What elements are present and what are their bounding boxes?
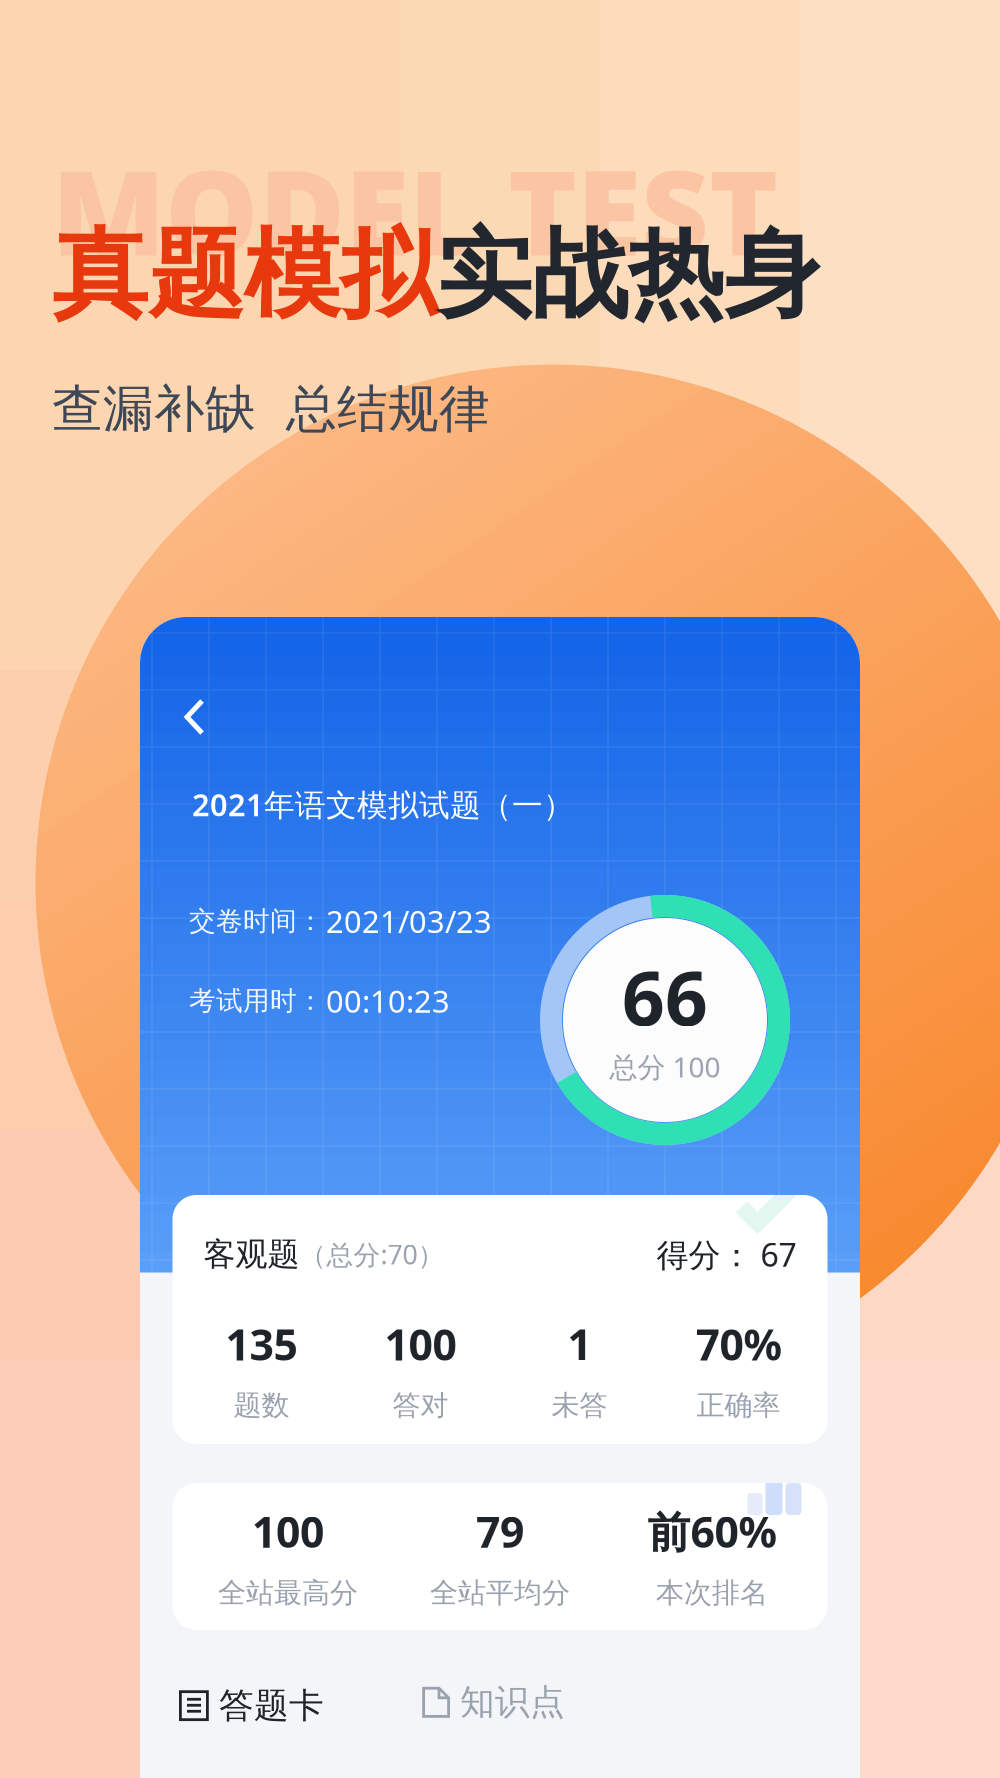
- button[interactable]: 答题卡: [140, 1670, 382, 1748]
- staticText: 考试用时：: [189, 984, 324, 1017]
- staticText: 题数: [233, 1388, 289, 1423]
- staticText: 真题模拟: [52, 216, 436, 334]
- staticText: 2021/03/23: [326, 901, 492, 941]
- staticText: 未答: [551, 1388, 607, 1423]
- staticText: 交卷时间：: [189, 905, 324, 937]
- staticText: 总分 100: [609, 1048, 720, 1085]
- staticText: 全站平均分: [430, 1576, 570, 1610]
- staticText: 得分： 67: [656, 1233, 796, 1275]
- staticText: 100: [252, 1503, 324, 1560]
- staticText: 1: [567, 1315, 591, 1372]
- staticText: MODEL TEST: [52, 132, 778, 288]
- staticText: 100: [384, 1315, 456, 1372]
- staticText: 答对: [392, 1388, 448, 1423]
- staticText: 2021年语文模拟试题（一）: [192, 784, 574, 825]
- staticText: 答题卡: [219, 1684, 324, 1727]
- button[interactable]: 知识点: [382, 1660, 607, 1759]
- staticText: 实战热身: [436, 216, 820, 334]
- staticText: 全站最高分: [218, 1576, 358, 1610]
- staticText: 135: [225, 1315, 297, 1372]
- staticText: 客观题: [203, 1235, 299, 1274]
- button[interactable]: Back: [140, 617, 237, 754]
- staticText: 66: [622, 947, 708, 1046]
- staticText: 正确率: [696, 1388, 780, 1423]
- staticText: 本次排名: [656, 1576, 768, 1610]
- staticText: 70%: [695, 1315, 781, 1372]
- staticText: 查漏补缺 总结规律: [52, 378, 490, 440]
- staticText: 前60%: [647, 1503, 776, 1560]
- staticText: 知识点: [460, 1681, 565, 1724]
- staticText: （总分:70）: [299, 1236, 444, 1272]
- staticText: 00:10:23: [326, 980, 450, 1021]
- staticText: 79: [476, 1503, 524, 1560]
